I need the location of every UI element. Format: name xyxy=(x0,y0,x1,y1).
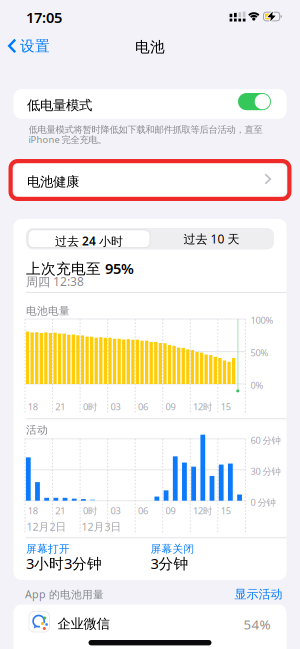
staticText: 低电量模式 xyxy=(27,97,92,113)
staticText: 60 分钟 xyxy=(250,434,280,446)
button[interactable]: 低电量模式 xyxy=(238,93,271,110)
staticText: 电池 xyxy=(135,38,165,56)
staticText: 周四 12:38 xyxy=(26,273,84,289)
staticText: iPhone 完全充电。 xyxy=(28,133,106,146)
staticText: 17:05 xyxy=(26,7,62,27)
staticText: 30 分钟 xyxy=(250,465,280,477)
button[interactable]: 设置 xyxy=(8,37,50,55)
staticText: 18 xyxy=(28,400,38,413)
staticText: 0 分钟 xyxy=(250,496,275,508)
staticText: 屏幕关闭 xyxy=(150,542,194,556)
staticText: 12月2日 xyxy=(26,519,66,534)
staticText: 12时 xyxy=(193,400,212,413)
staticText: App 的电池用量 xyxy=(25,587,104,601)
staticText: 3分钟 xyxy=(150,553,188,573)
staticText: 15 xyxy=(221,400,231,413)
staticText: 03 xyxy=(110,400,120,413)
button[interactable]: 企业微信 xyxy=(13,604,286,649)
staticText: 3小时3分钟 xyxy=(26,553,102,573)
staticText: 100% xyxy=(250,314,273,326)
staticText: 06 xyxy=(138,400,148,413)
staticText: 电池电量 xyxy=(26,304,70,318)
staticText: 0时 xyxy=(83,504,97,517)
staticText: 屏幕打开 xyxy=(26,542,70,556)
staticText: 活动 xyxy=(26,423,48,437)
staticText: 15 xyxy=(221,504,231,517)
staticText: 上次充电至 95% xyxy=(26,258,134,278)
staticText: 54% xyxy=(243,615,270,633)
button[interactable]: 显示活动 xyxy=(13,587,282,602)
staticText: 18 xyxy=(28,504,38,517)
button[interactable]: 过去 10 天 xyxy=(150,230,272,248)
staticText: 09 xyxy=(166,504,176,517)
staticText: 12月3日 xyxy=(81,519,121,534)
staticText: 09 xyxy=(166,400,176,413)
staticText: 过去 24 小时 xyxy=(55,233,123,249)
staticText: 12时 xyxy=(193,504,212,517)
staticText: 电池健康 xyxy=(27,173,79,190)
staticText: 设置 xyxy=(20,37,50,55)
staticText: 50% xyxy=(250,346,268,359)
staticText: 企业微信 xyxy=(57,615,109,632)
staticText: 显示活动 xyxy=(234,587,282,602)
staticText: 0% xyxy=(250,379,263,391)
staticText: 0时 xyxy=(83,400,97,413)
button[interactable]: 过去 24 小时 xyxy=(28,230,150,248)
staticText: 21 xyxy=(55,504,65,517)
staticText: 过去 10 天 xyxy=(183,231,239,247)
button[interactable]: 电池健康 xyxy=(13,163,286,197)
staticText: 21 xyxy=(55,400,65,413)
staticText: 06 xyxy=(138,504,148,517)
staticText: 低电量模式将暂时降低如下载和邮件抓取等后台活动，直至 xyxy=(28,124,262,135)
staticText: 03 xyxy=(110,504,120,517)
